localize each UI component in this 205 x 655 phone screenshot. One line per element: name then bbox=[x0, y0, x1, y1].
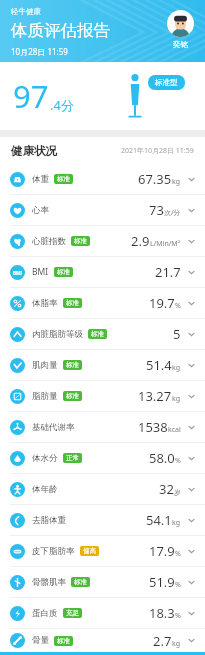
staticText: 岁 bbox=[174, 488, 181, 497]
staticText: % bbox=[175, 580, 181, 590]
staticText: 标准 bbox=[74, 578, 87, 586]
button[interactable]: 基础代谢率 bbox=[0, 412, 205, 442]
staticText: 去脂体重 bbox=[32, 515, 66, 526]
staticText: 58.0 bbox=[149, 449, 175, 467]
staticText: % bbox=[175, 456, 181, 466]
staticText: 54.1 bbox=[146, 511, 172, 529]
staticText: % bbox=[175, 549, 181, 559]
button[interactable]: 体脂率 bbox=[0, 288, 205, 318]
staticText: kcal bbox=[168, 425, 181, 435]
button[interactable]: 心脏指数 bbox=[0, 226, 205, 256]
staticText: 标准 bbox=[66, 361, 79, 369]
staticText: % bbox=[175, 301, 181, 311]
button[interactable]: 体重 bbox=[0, 164, 205, 194]
other: Expand 皮下脂肪率 bbox=[187, 547, 196, 556]
staticText: 正常 bbox=[66, 454, 79, 462]
button[interactable]: 蛋白质 bbox=[0, 598, 205, 628]
button[interactable]: 去脂体重 bbox=[0, 505, 205, 535]
staticText: 2.9 bbox=[131, 232, 150, 250]
staticText: BMI bbox=[32, 266, 49, 278]
other: Expand 脂肪量 bbox=[187, 392, 196, 401]
button[interactable]: 心率 bbox=[0, 195, 205, 225]
button[interactable]: 骨骼肌率 bbox=[0, 567, 205, 597]
staticText: 体脂率 bbox=[32, 298, 58, 309]
staticText: 标准 bbox=[91, 330, 104, 338]
staticText: 充足 bbox=[66, 609, 79, 617]
button[interactable]: 皮下脂肪率 bbox=[0, 536, 205, 566]
staticText: 奕铭 bbox=[173, 40, 188, 49]
staticText: 10月28日 11:59 bbox=[11, 46, 68, 57]
other: Expand 体脂率 bbox=[187, 299, 196, 308]
button[interactable]: 肌肉量 bbox=[0, 350, 205, 380]
staticText: kg bbox=[172, 363, 181, 373]
button[interactable]: BMI bbox=[0, 257, 205, 287]
other: Expand 肌肉量 bbox=[187, 361, 196, 370]
staticText: 21.7 bbox=[155, 263, 181, 281]
staticText: 皮下脂肪率 bbox=[32, 546, 75, 557]
button[interactable]: 内脏脂肪等级 bbox=[0, 319, 205, 349]
staticText: 标准 bbox=[74, 237, 87, 245]
staticText: 51.9 bbox=[149, 573, 175, 591]
staticText: 2021年10月28日 11:59 bbox=[121, 146, 194, 156]
staticText: 19.7 bbox=[149, 294, 175, 312]
staticText: 17.9 bbox=[149, 542, 175, 560]
staticText: 标准 bbox=[66, 299, 79, 307]
other: Expand 心脏指数 bbox=[187, 237, 196, 246]
staticText: 骨骼肌率 bbox=[32, 577, 66, 588]
staticText: 2.7 bbox=[153, 632, 172, 650]
other: Expand 体年龄 bbox=[187, 485, 196, 494]
staticText: 18.3 bbox=[149, 604, 175, 622]
staticText: 体重 bbox=[32, 174, 49, 185]
other: Expand 蛋白质 bbox=[187, 609, 196, 618]
staticText: 次/分 bbox=[164, 208, 181, 218]
other: Expand BMI bbox=[187, 268, 196, 277]
staticText: 标准 bbox=[66, 392, 79, 400]
other: Expand 骨量 bbox=[187, 636, 196, 645]
staticText: kg bbox=[172, 639, 181, 649]
other: Expand 骨骼肌率 bbox=[187, 578, 196, 587]
staticText: 1538 bbox=[138, 418, 168, 436]
staticText: % bbox=[175, 611, 181, 621]
other: Expand 内脏脂肪等级 bbox=[187, 330, 196, 339]
button[interactable]: User profile bbox=[167, 10, 194, 49]
staticText: 内脏脂肪等级 bbox=[32, 329, 83, 340]
staticText: 基础代谢率 bbox=[32, 422, 75, 433]
staticText: 13.27 bbox=[138, 387, 172, 405]
staticText: 73 bbox=[149, 201, 164, 219]
staticText: 标准 bbox=[57, 268, 70, 276]
staticText: 标准 bbox=[57, 175, 70, 183]
staticText: 体水分 bbox=[32, 453, 58, 464]
staticText: 32 bbox=[159, 480, 174, 498]
staticText: BMI bbox=[13, 270, 22, 276]
staticText: .4分 bbox=[50, 96, 74, 114]
staticText: 51.4 bbox=[146, 356, 172, 374]
staticText: 心率 bbox=[32, 205, 49, 216]
other: Expand 去脂体重 bbox=[187, 516, 196, 525]
other: Expand 心率 bbox=[187, 206, 196, 215]
other: Expand 体水分 bbox=[187, 454, 196, 463]
button[interactable]: 脂肪量 bbox=[0, 381, 205, 411]
button[interactable]: 体水分 bbox=[0, 443, 205, 473]
button[interactable]: 体年龄 bbox=[0, 474, 205, 504]
staticText: 标准型 bbox=[155, 78, 178, 87]
other: Expand 基础代谢率 bbox=[187, 423, 196, 432]
staticText: L/Min/M² bbox=[150, 239, 181, 249]
staticText: kg bbox=[172, 177, 181, 187]
staticText: 脂肪量 bbox=[32, 391, 58, 402]
staticText: 蛋白质 bbox=[32, 608, 58, 619]
staticText: 心脏指数 bbox=[32, 236, 66, 247]
staticText: 健康状况 bbox=[11, 144, 57, 158]
button[interactable]: 骨量 bbox=[0, 629, 205, 652]
staticText: 标准 bbox=[57, 637, 70, 645]
staticText: 体年龄 bbox=[32, 484, 58, 495]
staticText: 骨量 bbox=[32, 635, 49, 646]
staticText: 67.35 bbox=[138, 170, 172, 188]
other: Expand 体重 bbox=[187, 175, 196, 184]
staticText: 97 bbox=[13, 75, 49, 117]
staticText: 5 bbox=[173, 325, 181, 343]
staticText: kg bbox=[172, 518, 181, 528]
staticText: 轻牛健康 bbox=[11, 7, 41, 16]
staticText: 体质评估报告 bbox=[11, 20, 110, 41]
staticText: 肌肉量 bbox=[32, 360, 58, 371]
staticText: kg bbox=[172, 394, 181, 404]
